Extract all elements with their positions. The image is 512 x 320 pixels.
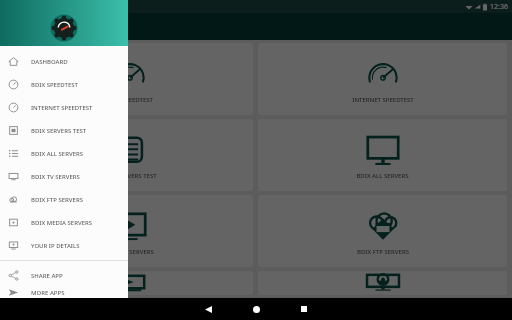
button[interactable]: YOUR IP DETAILS: [0, 234, 128, 257]
staticText: BDIX FTP SERVERS: [357, 248, 409, 256]
staticText: 12:36: [490, 2, 508, 12]
staticText: BDIX MEDIA SERVERS: [31, 219, 93, 227]
button[interactable]: Back: [191, 298, 225, 320]
button[interactable]: BDIX TV SERVERS: [5, 195, 253, 267]
staticText: SHARE APP: [31, 272, 63, 280]
button[interactable]: BDIX FTP SERVERS: [258, 195, 507, 267]
staticText: YOUR IP DETAILS: [31, 242, 80, 250]
button[interactable]: SHARE APP: [0, 264, 128, 287]
button[interactable]: DASHBOARD: [0, 50, 128, 73]
button[interactable]: BDIX TV SERVERS: [0, 165, 128, 188]
button[interactable]: BDIX MEDIA SERVERS: [5, 271, 253, 295]
button[interactable]: INTERNET SPEEDTEST: [258, 43, 507, 115]
button[interactable]: BDIX ALL SERVERS: [258, 119, 507, 191]
staticText: BDIX SPEEDTEST: [106, 96, 153, 104]
staticText: BDIX TV SERVERS: [105, 248, 154, 256]
staticText: BDIX ALL SERVERS: [356, 172, 409, 180]
button[interactable]: BDIX SPEEDTEST: [0, 73, 128, 96]
button[interactable]: BDIX SERVERS TEST: [5, 119, 253, 191]
button[interactable]: MORE APPS: [0, 287, 128, 298]
button[interactable]: BDIX FTP SERVERS: [0, 188, 128, 211]
staticText: DASHBOARD: [31, 58, 68, 66]
staticText: BDIX ALL SERVERS: [31, 150, 84, 158]
staticText: MORE APPS: [31, 289, 65, 297]
staticText: BDIX SPEEDTEST: [31, 81, 78, 89]
staticText: BDIX SERVERS TEST: [101, 172, 157, 180]
staticText: BDIX SERVERS TEST: [31, 127, 87, 135]
staticText: INTERNET SPEEDTEST: [352, 96, 414, 104]
button[interactable]: INTERNET SPEEDTEST: [0, 96, 128, 119]
staticText: BDIX FTP SERVERS: [31, 196, 83, 204]
staticText: BDIX TV SERVERS: [31, 173, 80, 181]
button[interactable]: Home: [239, 298, 273, 320]
button[interactable]: Recent apps: [287, 298, 321, 320]
button[interactable]: BDIX SERVERS TEST: [0, 119, 128, 142]
button[interactable]: BDIX SPEEDTEST: [5, 43, 253, 115]
button[interactable]: BDIX ALL SERVERS: [0, 142, 128, 165]
button[interactable]: YOUR IP DETAILS: [258, 271, 507, 295]
staticText: INTERNET SPEEDTEST: [31, 104, 93, 112]
button[interactable]: BDIX MEDIA SERVERS: [0, 211, 128, 234]
